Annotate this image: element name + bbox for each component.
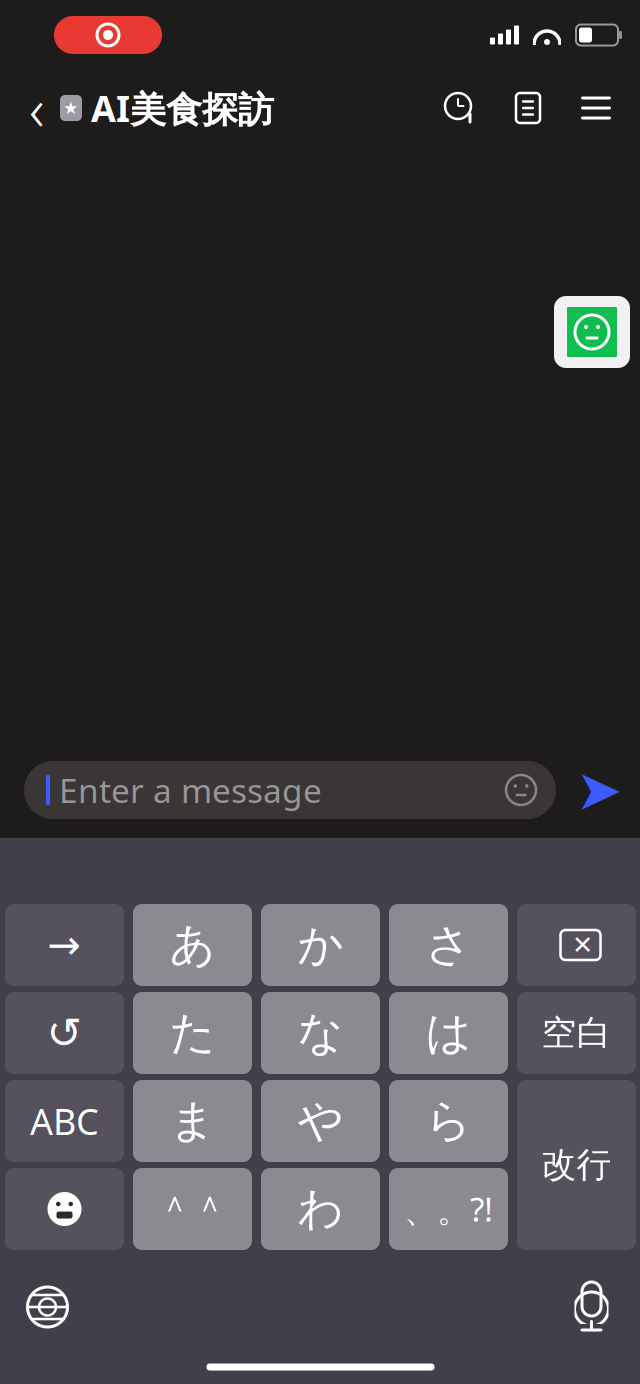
button[interactable]: ら xyxy=(389,1080,508,1162)
staticText: ‹ xyxy=(29,69,45,147)
button[interactable]: た xyxy=(133,992,252,1074)
staticText: ✕ xyxy=(572,931,593,959)
staticText: は xyxy=(425,1005,471,1061)
button[interactable]: ま xyxy=(133,1080,252,1162)
button[interactable]: は xyxy=(389,992,508,1074)
staticText: あ xyxy=(169,917,215,973)
staticText: さ xyxy=(425,917,471,973)
button[interactable]: Emoji xyxy=(5,1168,124,1250)
staticText: ABC xyxy=(30,1097,99,1145)
button[interactable]: 改行 xyxy=(517,1080,636,1250)
staticText: 、。?! xyxy=(404,1187,493,1231)
button[interactable]: Send xyxy=(572,763,626,817)
staticText: ↺ xyxy=(46,1009,82,1057)
staticText: ＾＾ xyxy=(157,1188,227,1230)
staticText: ら xyxy=(425,1093,471,1149)
button[interactable]: Menu xyxy=(578,90,614,126)
staticText: な xyxy=(297,1005,343,1061)
button[interactable]: Next keyboard xyxy=(24,1284,70,1330)
staticText: ➤ xyxy=(575,758,622,822)
button[interactable]: Enter a message xyxy=(24,761,556,819)
button[interactable]: さ xyxy=(389,904,508,986)
button[interactable]: Delete xyxy=(517,904,636,986)
button[interactable]: や xyxy=(261,1080,380,1162)
button[interactable]: Back xyxy=(14,78,60,138)
staticText: ★ xyxy=(63,98,79,118)
staticText: 空白 xyxy=(541,1012,611,1054)
button[interactable]: ↺ xyxy=(5,992,124,1074)
button[interactable]: 、。?! xyxy=(389,1168,508,1250)
button[interactable]: ★ xyxy=(60,78,274,138)
staticText: ま xyxy=(169,1093,215,1149)
staticText: た xyxy=(169,1005,215,1061)
button[interactable]: Notes xyxy=(510,90,546,126)
button[interactable]: Search history xyxy=(442,90,478,126)
button[interactable]: Dictation xyxy=(568,1281,614,1333)
button[interactable]: 空白 xyxy=(517,992,636,1074)
button[interactable]: か xyxy=(261,904,380,986)
staticText: わ xyxy=(297,1181,343,1237)
staticText: AI美食探訪 xyxy=(91,84,274,132)
staticText: か xyxy=(297,917,343,973)
button[interactable]: ＾＾ xyxy=(133,1168,252,1250)
button[interactable]: わ xyxy=(261,1168,380,1250)
button[interactable]: → xyxy=(5,904,124,986)
button[interactable]: ABC xyxy=(5,1080,124,1162)
staticText: Enter a message xyxy=(59,768,322,812)
staticText: → xyxy=(47,922,81,968)
staticText: 改行 xyxy=(541,1144,611,1186)
staticText: や xyxy=(297,1093,343,1149)
button[interactable]: あ xyxy=(133,904,252,986)
button[interactable]: な xyxy=(261,992,380,1074)
